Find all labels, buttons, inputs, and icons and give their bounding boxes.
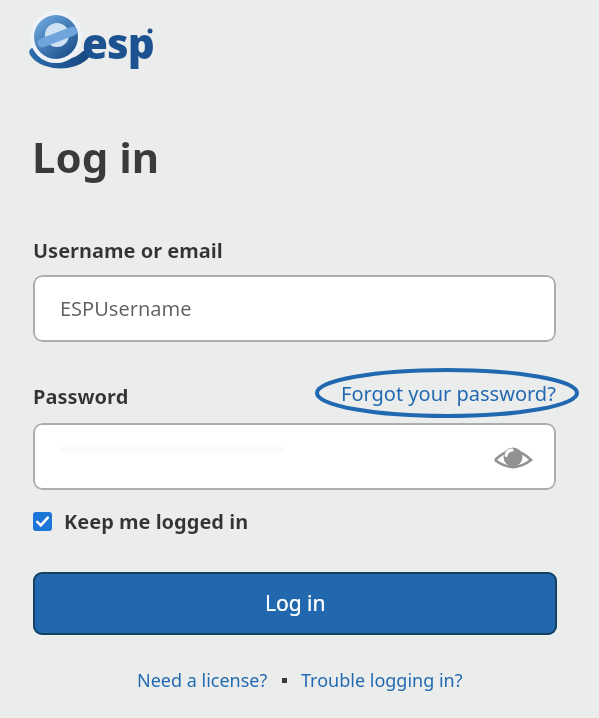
staticText: ESPUsername <box>60 295 192 322</box>
staticText: Log in <box>32 128 160 185</box>
button[interactable]: Keep me logged in <box>33 508 249 535</box>
button[interactable]: Forgot your password? <box>316 368 580 418</box>
button[interactable]: Trouble logging in? <box>301 668 463 693</box>
staticText: Password <box>33 383 129 410</box>
button[interactable]: Need a license? <box>137 668 268 693</box>
button[interactable]: ESPUsername <box>33 275 556 342</box>
button[interactable] <box>33 423 556 490</box>
staticText: Keep me logged in <box>64 508 249 535</box>
staticText: Forgot your password? <box>341 380 556 407</box>
button[interactable]: Log in <box>33 572 557 635</box>
staticText: Username or email <box>33 237 223 264</box>
staticText: esp <box>82 14 154 71</box>
button[interactable]: esp <box>30 12 160 74</box>
staticText: Log in <box>265 589 326 618</box>
